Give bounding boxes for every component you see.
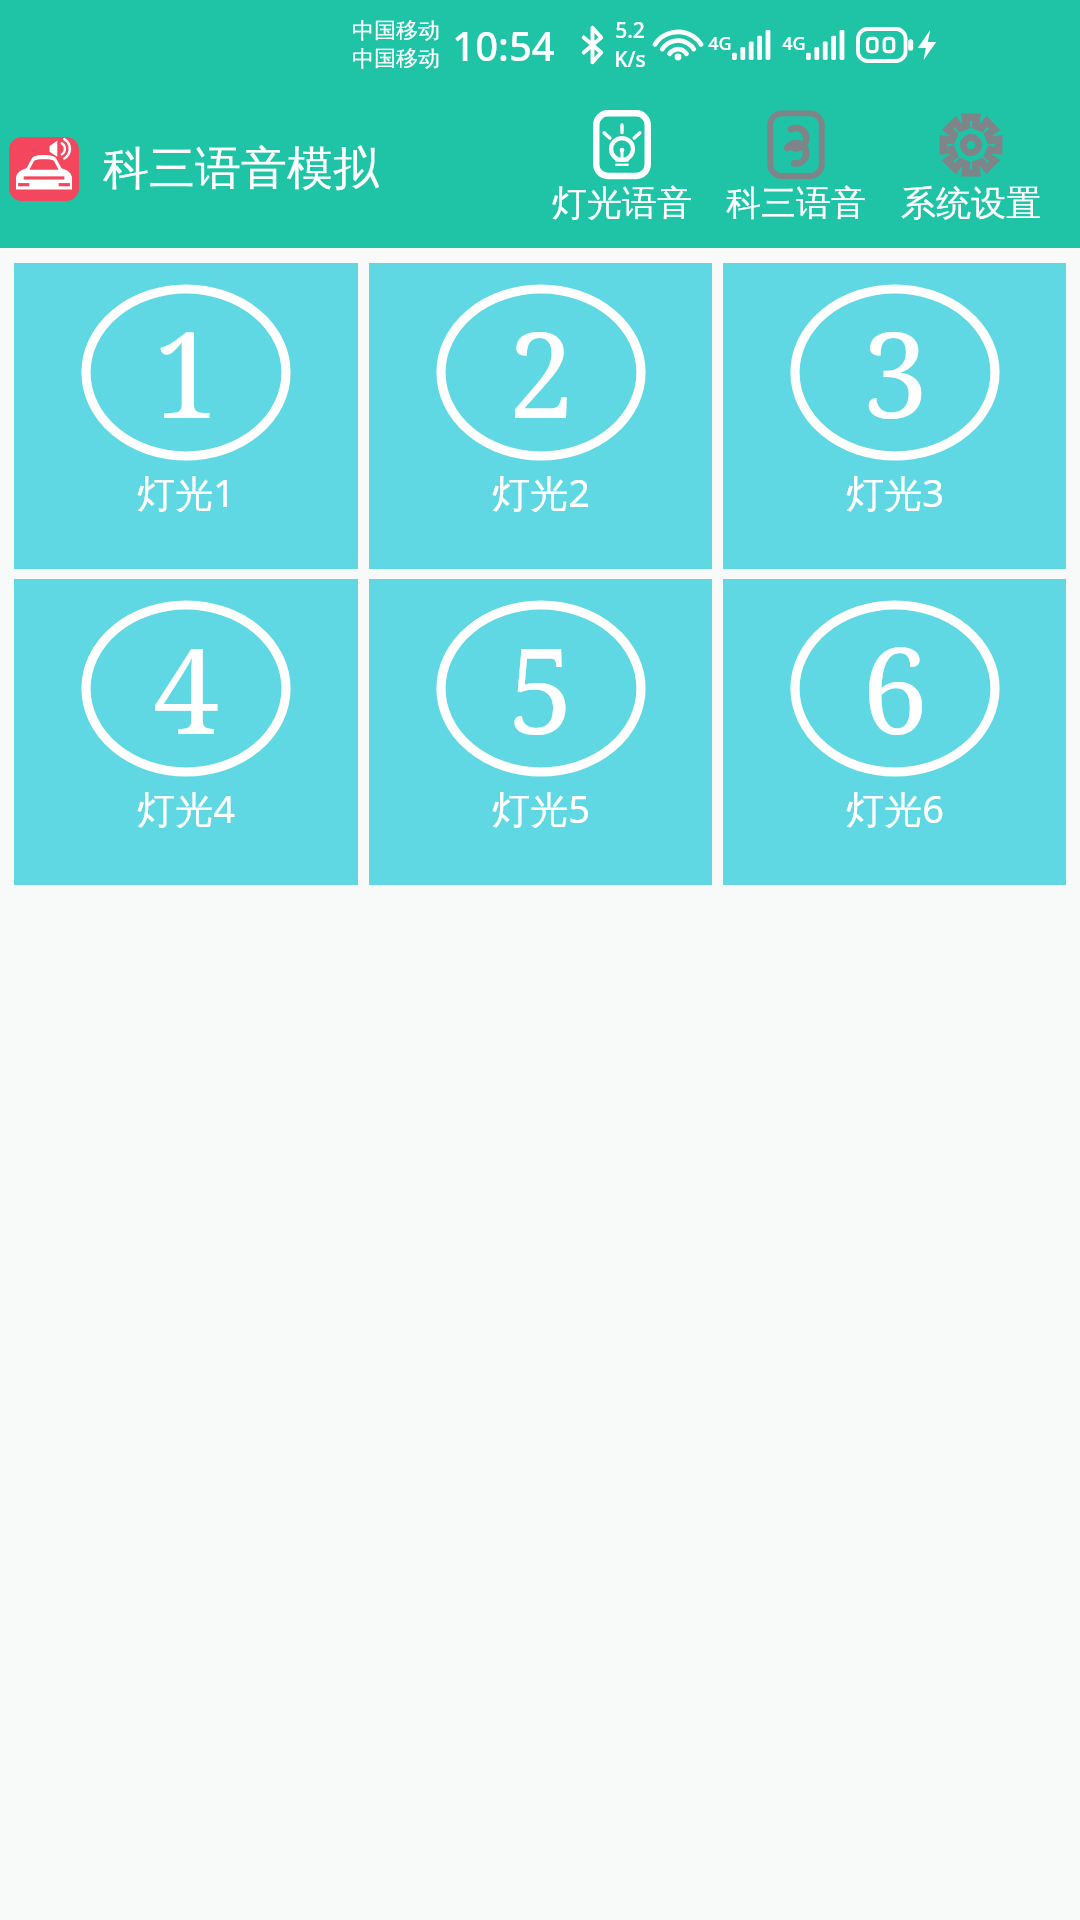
staticText: 4G xyxy=(708,31,732,56)
button[interactable]: Subject three voice xyxy=(722,112,870,225)
staticText: 灯光2 xyxy=(492,466,590,518)
staticText: 5 xyxy=(508,608,574,769)
button[interactable]: 1 xyxy=(14,263,358,569)
staticText: 灯光4 xyxy=(137,782,235,834)
staticText: 系统设置 xyxy=(901,181,1041,225)
staticText: K/s xyxy=(614,45,646,74)
staticText: 灯光5 xyxy=(492,782,590,834)
staticText: 5.2 xyxy=(615,16,645,45)
staticText: 灯光语音 xyxy=(552,181,692,225)
button[interactable]: 3 xyxy=(723,263,1066,569)
staticText: 2 xyxy=(508,292,574,453)
staticText: 中国移动 xyxy=(352,45,440,73)
button[interactable]: 2 xyxy=(369,263,712,569)
staticText: 10:54 xyxy=(452,18,555,72)
staticText: 4 xyxy=(153,608,219,769)
button[interactable]: 6 xyxy=(723,579,1066,885)
button[interactable]: Light voice xyxy=(548,112,696,225)
staticText: 4G xyxy=(782,31,806,56)
staticText: 3 xyxy=(862,292,928,453)
button[interactable]: Settings xyxy=(897,112,1045,225)
staticText: 1 xyxy=(153,292,219,453)
staticText: 科三语音 xyxy=(726,181,866,225)
staticText: 灯光6 xyxy=(846,782,944,834)
button[interactable]: App icon xyxy=(9,137,79,201)
staticText: 中国移动 xyxy=(352,17,440,45)
staticText: 灯光3 xyxy=(846,466,944,518)
button[interactable]: 4 xyxy=(14,579,358,885)
staticText: 科三语音模拟 xyxy=(103,140,379,198)
button[interactable]: 5 xyxy=(369,579,712,885)
staticText: 6 xyxy=(862,608,928,769)
staticText: 灯光1 xyxy=(137,466,235,518)
